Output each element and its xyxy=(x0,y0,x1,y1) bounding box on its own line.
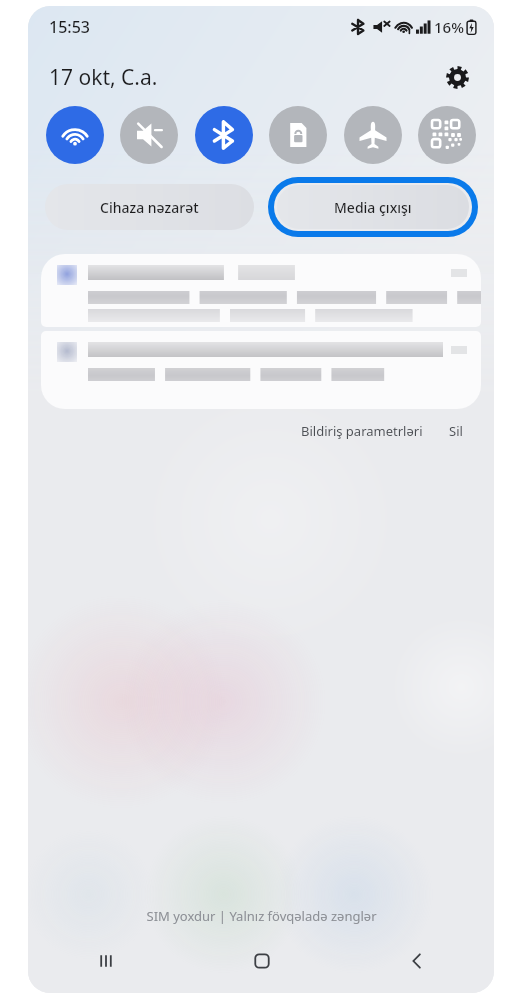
button[interactable]: Bluetooth xyxy=(195,106,253,164)
button[interactable] xyxy=(41,331,481,409)
staticText: Bildiriş parametrləri xyxy=(301,422,423,440)
staticText: 15:53 xyxy=(49,16,90,38)
button[interactable]: Home xyxy=(184,939,339,983)
button[interactable]: Cihaza nəzarət xyxy=(45,184,254,230)
button[interactable]: 17 okt, C.a. xyxy=(49,63,158,92)
staticText: 16% xyxy=(434,17,464,37)
staticText: SIM yoxdur | Yalnız fövqəladə zənglər xyxy=(146,907,377,925)
staticText: Media çıxışı xyxy=(334,198,412,217)
staticText: Sil xyxy=(449,422,463,440)
button[interactable]: Wi-Fi xyxy=(46,106,104,164)
button[interactable]: Back xyxy=(339,939,494,983)
button[interactable]: Bildiriş parametrləri xyxy=(297,418,427,444)
button[interactable]: SIM lock xyxy=(269,106,327,164)
button[interactable]: Media çıxışı xyxy=(277,185,469,229)
button[interactable]: Sil xyxy=(445,418,467,444)
staticText: Cihaza nəzarət xyxy=(100,198,199,217)
button[interactable] xyxy=(41,254,481,327)
button[interactable]: Airplane mode xyxy=(344,106,402,164)
button[interactable]: Scan QR code xyxy=(418,106,476,164)
button[interactable]: Sound off xyxy=(120,106,178,164)
button[interactable]: Settings xyxy=(440,60,474,94)
button[interactable]: Recent apps xyxy=(28,939,184,983)
